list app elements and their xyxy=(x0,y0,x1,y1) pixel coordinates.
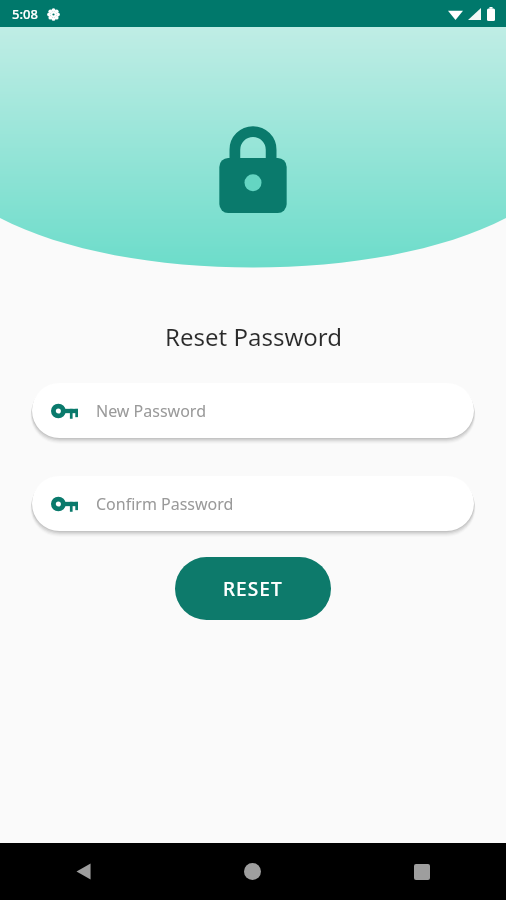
staticText: RESET xyxy=(223,576,283,602)
staticText: Confirm Password xyxy=(96,493,234,515)
button[interactable]: Home xyxy=(168,843,337,900)
button[interactable]: Confirm Password xyxy=(32,476,474,531)
staticText: 5:08 xyxy=(12,5,38,23)
staticText: Reset Password xyxy=(165,320,342,353)
button[interactable]: Recent apps xyxy=(337,843,506,900)
button[interactable]: New Password xyxy=(32,383,474,438)
staticText: New Password xyxy=(96,400,206,422)
button[interactable]: RESET xyxy=(175,557,331,620)
button[interactable]: Back xyxy=(0,843,168,900)
